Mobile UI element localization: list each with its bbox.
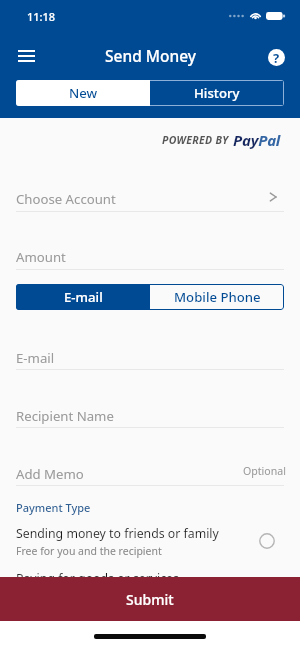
staticText: 11:18 <box>27 9 56 24</box>
staticText: ? <box>273 49 280 66</box>
button[interactable]: New <box>16 80 150 106</box>
staticText: Submit <box>126 590 174 609</box>
button[interactable]: Sending money to friends or family <box>16 524 284 558</box>
button[interactable]: Paying for goods or services <box>16 570 284 604</box>
staticText: Amount <box>16 248 66 266</box>
staticText: New <box>69 84 98 102</box>
staticText: E-mail <box>16 349 55 367</box>
button[interactable]: Mobile Phone <box>150 284 284 310</box>
staticText: Payment Type <box>16 500 91 515</box>
staticText: Add Memo <box>16 465 84 483</box>
button[interactable]: History <box>150 81 283 105</box>
staticText: Send Money <box>105 45 196 66</box>
staticText: Mobile Phone <box>174 288 261 306</box>
staticText: Paying for goods or services <box>16 570 179 587</box>
staticText: History <box>194 84 240 102</box>
button[interactable]: Submit <box>0 577 300 621</box>
staticText: Free for you and the recipient <box>16 544 162 558</box>
button[interactable]: E-mail <box>16 284 150 310</box>
staticText: E-mail <box>64 288 103 306</box>
staticText: POWERED BY <box>162 133 229 147</box>
staticText: Optional <box>243 464 286 478</box>
staticText: Choose Account <box>16 190 116 208</box>
button[interactable]: Help <box>261 42 291 72</box>
staticText: PayPal <box>233 130 281 150</box>
staticText: Sending money to friends or family <box>16 525 219 542</box>
staticText: Recipient Name <box>16 407 114 425</box>
button[interactable]: Menu <box>8 38 44 74</box>
